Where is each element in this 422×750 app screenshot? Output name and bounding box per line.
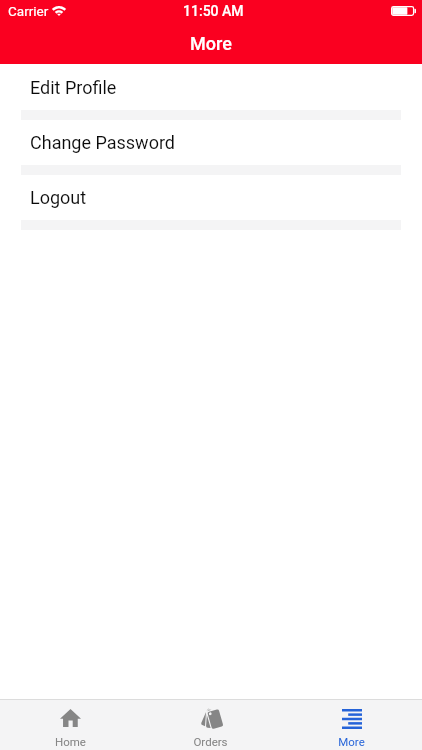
- other: More: [342, 709, 362, 729]
- button[interactable]: Change Password: [0, 120, 422, 165]
- button[interactable]: Edit Profile: [0, 64, 422, 110]
- button[interactable]: Logout: [0, 175, 422, 220]
- staticText: More: [338, 735, 365, 748]
- staticText: Carrier: [8, 3, 49, 19]
- button[interactable]: Orders: [140, 699, 281, 750]
- button[interactable]: More: [281, 699, 422, 750]
- button[interactable]: Home: [0, 699, 140, 750]
- staticText: 11:50 AM: [183, 3, 244, 19]
- other: Home: [60, 709, 81, 727]
- staticText: Logout: [30, 187, 87, 208]
- staticText: Orders: [193, 735, 228, 748]
- other: Orders: [200, 709, 221, 729]
- staticText: Edit Profile: [30, 77, 117, 98]
- staticText: More: [190, 33, 232, 54]
- staticText: Home: [55, 735, 86, 748]
- staticText: Change Password: [30, 132, 175, 153]
